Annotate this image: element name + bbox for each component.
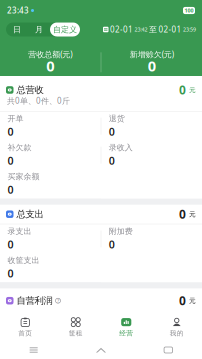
staticText: 02-01 [110,24,133,35]
button[interactable]: 我的 [151,313,202,341]
staticText: 我的 [170,329,184,337]
staticText: ? [57,297,59,304]
staticText: 至 [149,25,157,34]
staticText: 0 [179,206,186,222]
staticText: 经营 [119,329,133,337]
staticText: 筐租 [69,329,83,337]
staticText: 首页 [18,329,32,337]
staticText: 元 [189,297,196,305]
staticText: 0 [7,153,13,168]
staticText: 0 [7,124,13,139]
staticText: 自营利润 [16,295,52,306]
button[interactable]: 补欠款 [0,141,101,170]
staticText: 自定义 [53,25,77,34]
button[interactable]: 附加费 [101,224,202,253]
staticText: 买家余额 [7,172,39,181]
staticText: 0 [179,293,186,309]
button[interactable]: 买家余额 [0,170,101,199]
staticText: 23:59 [183,26,196,33]
staticText: 0 [7,237,13,251]
button[interactable]: 02-01 [103,24,196,35]
staticText: 100 [184,7,193,14]
staticText: 23:43 [7,5,29,16]
staticText: 02-01 [158,24,181,35]
staticText: 0 [46,56,54,76]
staticText: 23:42 [134,26,147,33]
staticText: 0 [148,56,156,76]
staticText: 附加费 [109,226,133,236]
staticText: 开单 [7,114,23,123]
staticText: 元 [189,210,196,218]
staticText: 总支出 [16,208,43,220]
button[interactable]: Recents [0,341,67,359]
button[interactable]: 收筐支出 [0,253,101,282]
staticText: 日 [13,25,21,34]
button[interactable]: 筐租 [50,313,101,341]
staticText: 总营收 [16,84,43,96]
button[interactable]: Home [67,341,135,359]
button[interactable]: 首页 [0,313,50,341]
button[interactable]: 录支出 [0,224,101,253]
staticText: 0 [7,266,13,280]
button[interactable]: 月 [28,22,50,36]
button[interactable]: 退货 [101,112,202,141]
staticText: 录支出 [7,226,31,236]
staticText: 补欠款 [7,143,31,152]
staticText: 录收入 [109,143,133,152]
staticText: 元 [189,86,196,94]
staticText: 0 [109,153,115,168]
button[interactable]: 日 [6,22,28,36]
button[interactable]: 经营 [101,313,151,341]
staticText: 共0单、0件、0斤 [7,95,70,106]
button[interactable]: 开单 [0,112,101,141]
staticText: 月 [35,25,43,34]
staticText: 0 [179,82,186,98]
staticText: 0 [109,237,115,251]
button[interactable]: Back [135,341,202,359]
button[interactable]: 录收入 [101,141,202,170]
staticText: 退货 [109,114,125,123]
button[interactable]: 自定义 [50,22,80,36]
staticText: 收筐支出 [7,255,39,265]
staticText: 营收总额(元) [28,49,72,60]
staticText: 0 [7,182,13,197]
staticText: 0 [109,124,115,139]
staticText: 新增赊欠(元) [130,49,174,60]
